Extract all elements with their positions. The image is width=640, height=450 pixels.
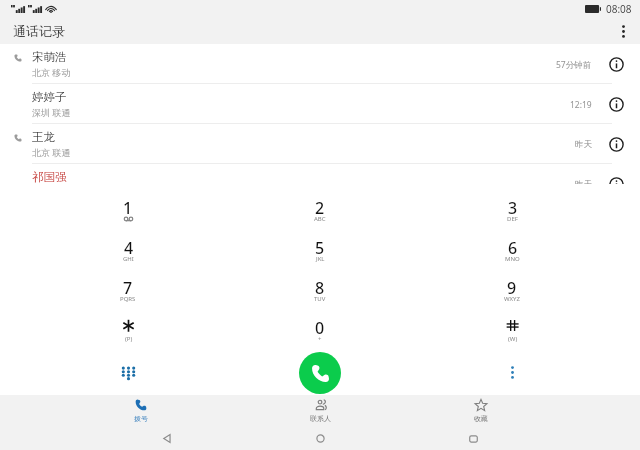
button[interactable]: Recent apps xyxy=(397,427,550,450)
staticText: 8 xyxy=(315,277,325,294)
staticText: 联系人 xyxy=(310,414,331,423)
staticText: (P) xyxy=(125,335,133,343)
button[interactable]: 1 xyxy=(32,190,224,230)
button[interactable]: Call xyxy=(299,352,341,394)
button[interactable]: 宋萌浩 xyxy=(0,44,640,84)
button[interactable]: 3 xyxy=(416,190,608,230)
staticText: 婷婷子 xyxy=(32,90,67,104)
staticText: DEF xyxy=(507,215,518,223)
button[interactable]: 7 xyxy=(32,270,224,310)
staticText: 王龙 xyxy=(32,130,55,144)
staticText: 57分钟前 xyxy=(556,59,592,71)
button[interactable]: 收藏 xyxy=(401,395,561,427)
staticText: 通话记录 xyxy=(13,23,65,39)
button[interactable]: (P) xyxy=(32,310,224,350)
button[interactable]: Hide keypad xyxy=(32,350,224,395)
button[interactable]: Call details xyxy=(606,134,626,154)
button[interactable]: More xyxy=(416,350,608,395)
staticText: 拨号 xyxy=(134,414,148,423)
button[interactable]: Call details xyxy=(606,94,626,114)
staticText: MNO xyxy=(505,255,520,263)
staticText: ABC xyxy=(314,215,326,223)
button[interactable]: (W) xyxy=(416,310,608,350)
button[interactable]: 0 xyxy=(224,310,416,350)
staticText: 08:08 xyxy=(606,2,632,16)
staticText: + xyxy=(318,335,322,343)
staticText: 9 xyxy=(507,277,517,294)
staticText: 北京 联通 xyxy=(32,146,71,158)
button[interactable]: 2 xyxy=(224,190,416,230)
staticText: (W) xyxy=(508,335,518,343)
staticText: 7 xyxy=(123,277,133,294)
staticText: 2 xyxy=(315,197,325,214)
button[interactable]: 王龙 xyxy=(0,124,640,164)
button[interactable]: Call details xyxy=(606,174,626,184)
staticText: 0 xyxy=(315,317,325,334)
button[interactable]: 9 xyxy=(416,270,608,310)
staticText: 宋萌浩 xyxy=(32,50,67,64)
staticText: 4 xyxy=(124,237,134,254)
staticText: 昨天 xyxy=(575,179,592,184)
staticText: WXYZ xyxy=(504,295,520,303)
staticText: 收藏 xyxy=(474,414,488,423)
staticText: 祁国强 xyxy=(32,170,67,184)
staticText: 昨天 xyxy=(575,139,592,150)
button[interactable]: 拨号 xyxy=(61,395,221,427)
button[interactable]: Home xyxy=(244,427,397,450)
staticText: 5 xyxy=(315,237,325,254)
staticText: 6 xyxy=(508,237,518,254)
button[interactable]: 祁国强 xyxy=(0,164,640,184)
staticText: 1 xyxy=(123,197,133,214)
button[interactable]: 6 xyxy=(416,230,608,270)
button[interactable]: 5 xyxy=(224,230,416,270)
button[interactable]: Back xyxy=(90,427,244,450)
button[interactable]: 8 xyxy=(224,270,416,310)
staticText: 深圳 联通 xyxy=(32,106,71,118)
staticText: 12:19 xyxy=(570,99,592,111)
button[interactable]: 婷婷子 xyxy=(0,84,640,124)
staticText: GHI xyxy=(123,255,134,263)
button[interactable]: More options xyxy=(606,18,640,44)
staticText: PQRS xyxy=(120,295,136,303)
staticText: 3 xyxy=(508,197,518,214)
button[interactable]: 联系人 xyxy=(240,395,400,427)
button[interactable]: Call details xyxy=(606,54,626,74)
staticText: JKL xyxy=(316,255,325,263)
staticText: 北京 移动 xyxy=(32,66,71,78)
button[interactable]: 4 xyxy=(32,230,224,270)
staticText: TUV xyxy=(314,295,326,303)
